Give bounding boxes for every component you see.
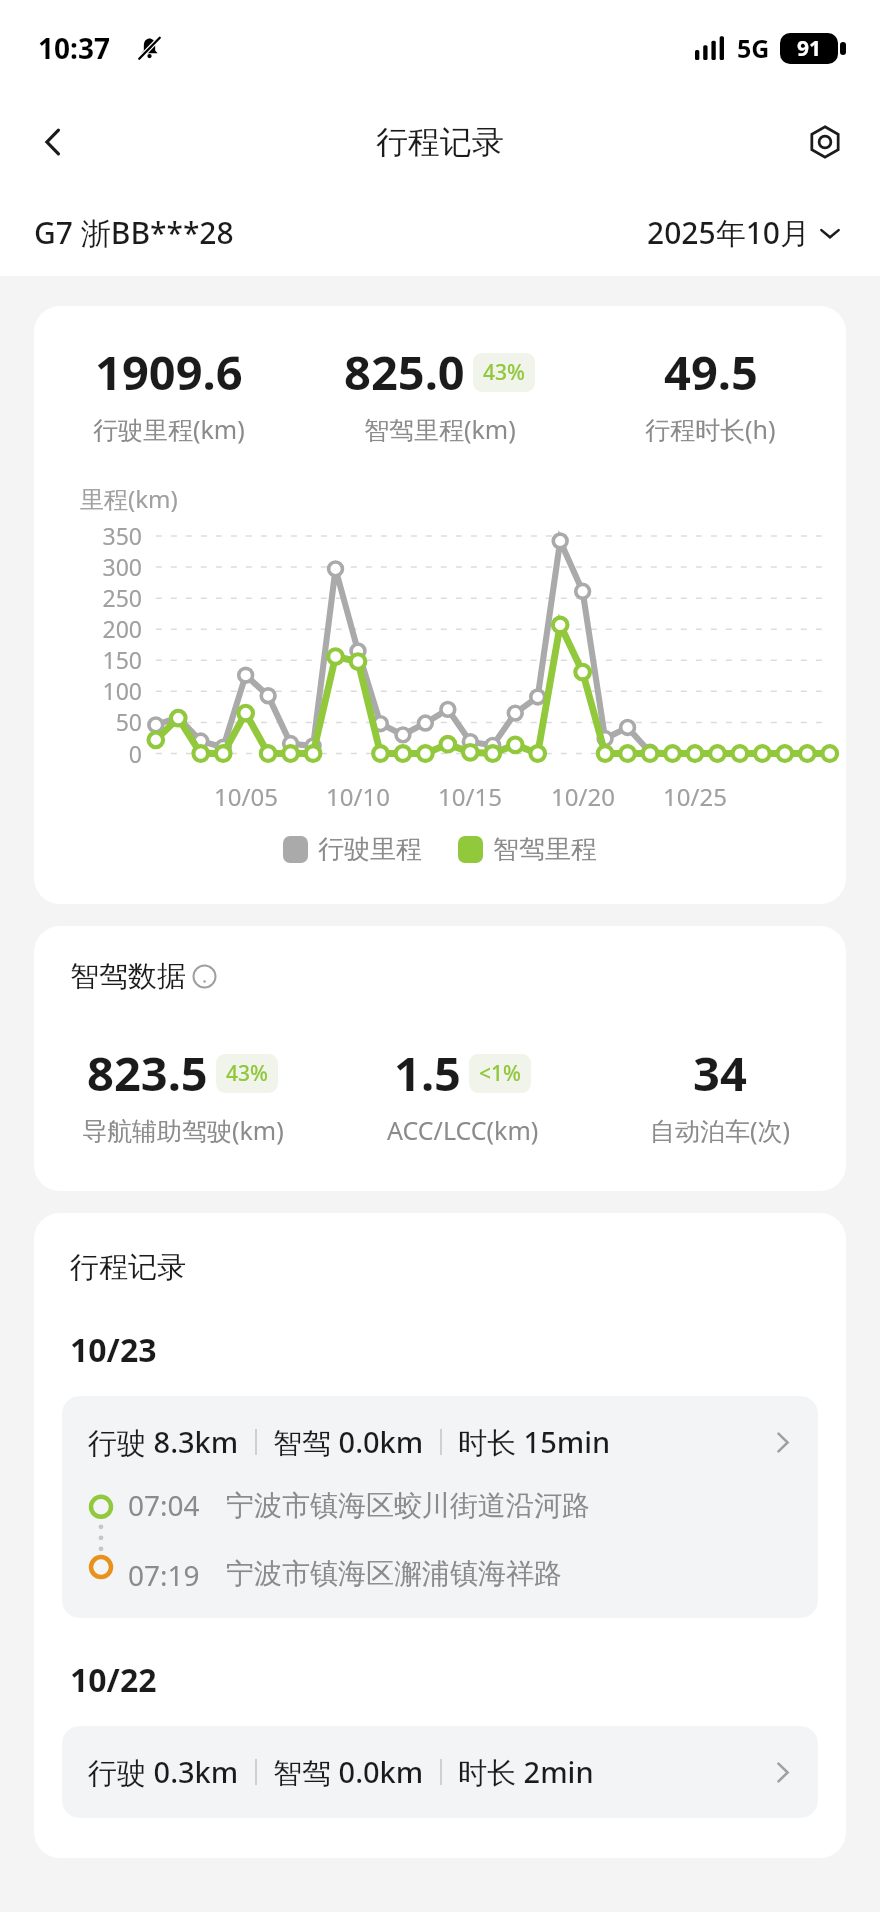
staticText: 10/15 — [432, 780, 508, 813]
staticText: 1.5 — [394, 1041, 461, 1105]
staticText: 200 — [76, 613, 142, 644]
staticText: 10/23 — [70, 1328, 157, 1372]
staticText: 时长 15min — [458, 1422, 611, 1462]
button[interactable]: 智驾数据 — [70, 958, 217, 995]
staticText: 智驾里程(km) — [364, 412, 516, 446]
staticText: 50 — [76, 706, 142, 737]
staticText: 10:37 — [38, 29, 110, 67]
staticText: 10/22 — [70, 1658, 157, 1702]
staticText: 宁波市镇海区澥浦镇海祥路 — [226, 1556, 562, 1590]
staticText: 100 — [76, 675, 142, 706]
staticText: 250 — [76, 582, 142, 613]
staticText: 行程时长(h) — [645, 412, 776, 446]
staticText: 10/25 — [657, 780, 733, 813]
staticText: 行驶里程(km) — [93, 412, 245, 446]
staticText: 智驾数据 — [70, 958, 186, 995]
staticText: 43% — [483, 358, 525, 387]
staticText: 10/10 — [320, 780, 396, 813]
button[interactable]: Settings — [792, 109, 858, 175]
staticText: 825.0 — [344, 340, 465, 404]
staticText: 5G — [737, 31, 770, 65]
staticText: 07:04 — [128, 1486, 200, 1524]
staticText: 智驾 0.0km — [273, 1752, 424, 1792]
staticText: 10/20 — [545, 780, 621, 813]
staticText: G7 浙BB***28 — [34, 212, 234, 253]
staticText: 行程记录 — [70, 1249, 186, 1286]
button[interactable]: Back — [20, 109, 86, 175]
staticText: 150 — [76, 644, 142, 675]
staticText: 49.5 — [664, 340, 758, 404]
staticText: 0 — [76, 738, 142, 769]
button[interactable]: 行驶里程 — [283, 833, 422, 866]
button[interactable]: 行驶 0.3km — [62, 1726, 818, 1818]
staticText: 07:19 — [128, 1556, 200, 1590]
staticText: 行驶 0.3km — [88, 1752, 239, 1792]
staticText: <1% — [479, 1059, 521, 1088]
staticText: ACC/LCC(km) — [387, 1113, 539, 1147]
staticText: 34 — [693, 1041, 747, 1105]
staticText: 10/05 — [208, 780, 284, 813]
staticText: 行程记录 — [376, 122, 504, 162]
staticText: 智驾里程 — [493, 833, 597, 866]
staticText: 823.5 — [87, 1041, 208, 1105]
button[interactable]: 行驶 8.3km — [62, 1396, 818, 1618]
staticText: 350 — [76, 520, 142, 551]
staticText: 智驾 0.0km — [273, 1422, 424, 1462]
staticText: 里程(km) — [80, 482, 178, 515]
staticText: 自动泊车(次) — [650, 1113, 791, 1147]
staticText: 1909.6 — [95, 340, 243, 404]
staticText: 导航辅助驾驶(km) — [82, 1113, 284, 1147]
staticText: 300 — [76, 551, 142, 582]
staticText: 行驶 8.3km — [88, 1422, 239, 1462]
button[interactable]: 2025年10月 — [643, 208, 846, 257]
staticText: 91 — [797, 34, 822, 63]
staticText: 2025年10月 — [647, 212, 810, 253]
staticText: 时长 2min — [458, 1752, 594, 1792]
button[interactable]: 智驾里程 — [458, 833, 597, 866]
staticText: 行驶里程 — [318, 833, 422, 866]
staticText: 宁波市镇海区蛟川街道沿河路 — [226, 1488, 590, 1523]
staticText: 43% — [226, 1059, 268, 1088]
